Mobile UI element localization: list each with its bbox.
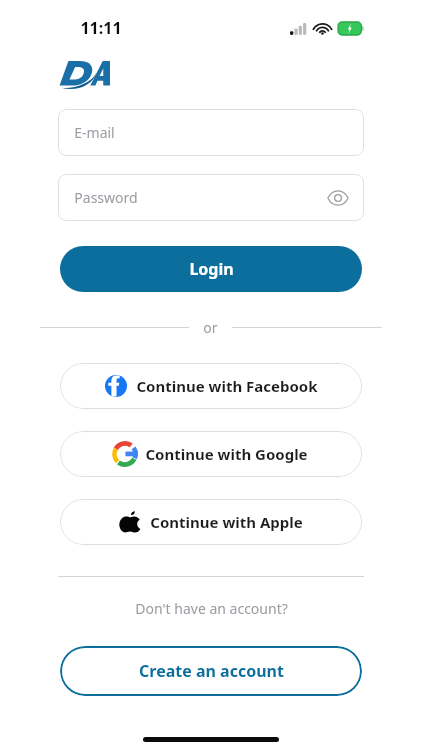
button[interactable]: E-mail (58, 109, 364, 156)
staticText: Login (189, 258, 234, 280)
staticText: or (203, 318, 218, 336)
button[interactable]: Password (58, 174, 364, 221)
staticText: Don't have an account? (135, 599, 288, 618)
staticText: Continue with Facebook (136, 376, 318, 396)
button[interactable]: Continue with Apple (60, 499, 362, 545)
staticText: Password (74, 188, 138, 207)
staticText: Create an account (139, 660, 284, 682)
button[interactable]: Login (60, 246, 362, 292)
button[interactable]: Create an account (60, 646, 362, 696)
staticText: Continue with Apple (150, 512, 303, 532)
staticText: 11:11 (80, 17, 122, 39)
staticText: E-mail (74, 123, 115, 142)
staticText: Continue with Google (145, 444, 308, 464)
button[interactable]: Continue with Facebook (60, 363, 362, 409)
button[interactable]: Show password (326, 186, 350, 210)
button[interactable]: Continue with Google (60, 431, 362, 477)
